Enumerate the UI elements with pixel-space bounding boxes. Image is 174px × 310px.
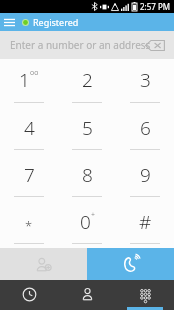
button[interactable]: Recent calls — [0, 280, 58, 310]
staticText: 2:57 PM — [140, 1, 171, 12]
staticText: Enter a number or an address — [10, 38, 151, 52]
button[interactable]: Dial 1 — [0, 59, 58, 107]
button[interactable]: Keypad — [116, 280, 174, 310]
button[interactable]: Dial 4 — [0, 107, 58, 154]
button[interactable]: Dial 6 — [116, 107, 174, 154]
staticText: 1 — [19, 67, 30, 93]
staticText: 3 — [140, 67, 151, 93]
button[interactable]: Dial 0 — [58, 201, 116, 248]
button[interactable]: Open navigation menu — [0, 13, 18, 31]
staticText: 0 — [80, 209, 91, 235]
button[interactable]: Dial 5 — [58, 107, 116, 154]
staticText: 9 — [140, 162, 151, 188]
button[interactable]: Contacts — [58, 280, 116, 310]
button[interactable]: Backspace — [142, 35, 168, 55]
button[interactable]: Dial 2 — [58, 59, 116, 107]
staticText: oo — [30, 68, 39, 78]
button[interactable]: Dial * — [0, 201, 58, 248]
staticText: 2 — [82, 67, 93, 93]
staticText: 4 — [24, 115, 35, 141]
staticText: # — [139, 209, 152, 235]
button[interactable]: Dial 7 — [0, 154, 58, 201]
staticText: 5 — [82, 115, 93, 141]
button[interactable]: Enter a number or an address — [0, 31, 174, 59]
button[interactable]: Dial 3 — [116, 59, 174, 107]
staticText: 7 — [24, 162, 35, 188]
button[interactable]: Call — [87, 248, 174, 280]
staticText: 6 — [140, 115, 151, 141]
staticText: + — [91, 210, 95, 220]
button[interactable]: Add contact — [0, 248, 87, 280]
button[interactable]: Dial 8 — [58, 154, 116, 201]
staticText: Registered — [33, 16, 79, 28]
staticText: 8 — [82, 162, 93, 188]
button[interactable]: Dial # — [116, 201, 174, 248]
staticText: * — [25, 217, 33, 235]
button[interactable]: Dial 9 — [116, 154, 174, 201]
